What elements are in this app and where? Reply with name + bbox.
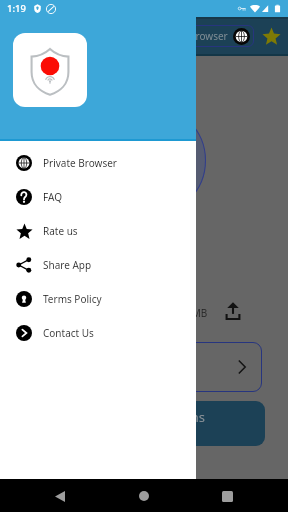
staticText: Browser (189, 29, 228, 43)
button[interactable]: Rate us (0, 214, 196, 248)
button[interactable]: Private Browser (0, 146, 196, 180)
button[interactable]: FAQ (0, 180, 196, 214)
button[interactable]: Share App (0, 248, 196, 282)
staticText: Contact Us (43, 326, 94, 340)
staticText: Rate us (43, 224, 78, 238)
button[interactable]: Favourite (258, 23, 284, 49)
button[interactable]: Connections (150, 401, 265, 446)
staticText: Share App (43, 258, 92, 272)
button[interactable]: Next (150, 342, 262, 392)
staticText: Connections (150, 408, 205, 426)
staticText: 1:19 (7, 2, 26, 15)
button[interactable]: Contact Us (0, 316, 196, 350)
staticText: FAQ (43, 190, 62, 204)
button[interactable]: Recents (211, 480, 243, 512)
button[interactable]: Terms Policy (0, 282, 196, 316)
staticText: 350 MB (172, 306, 208, 320)
button[interactable]: Browser (180, 25, 254, 47)
button[interactable]: Home (128, 480, 160, 512)
staticText: Private Browser (43, 156, 117, 170)
button[interactable]: Back (44, 480, 76, 512)
staticText: Terms Policy (43, 292, 102, 306)
